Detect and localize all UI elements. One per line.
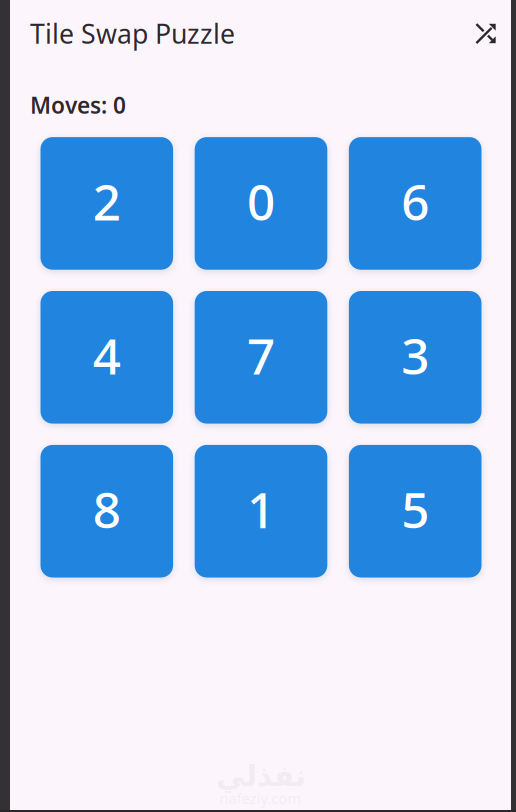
staticText: nafezly.com (219, 788, 301, 808)
staticText: 6 (401, 169, 429, 234)
button[interactable]: 1 (195, 445, 327, 577)
staticText: 7 (247, 322, 275, 388)
button[interactable]: 3 (349, 291, 481, 424)
button[interactable]: 2 (40, 137, 173, 270)
staticText: Moves: 0 (30, 90, 126, 120)
button[interactable]: Shuffle (469, 16, 503, 50)
staticText: 3 (401, 322, 429, 388)
button[interactable]: 7 (195, 291, 327, 424)
staticText: 5 (401, 476, 429, 542)
staticText: Tile Swap Puzzle (30, 16, 235, 51)
button[interactable]: 8 (40, 445, 173, 577)
button[interactable]: 6 (349, 137, 481, 270)
button[interactable]: 4 (40, 291, 173, 424)
button[interactable]: 0 (195, 137, 327, 270)
staticText: 1 (247, 476, 275, 542)
staticText: 0 (247, 169, 275, 234)
staticText: 2 (93, 169, 121, 234)
staticText: نفذلي (215, 759, 305, 792)
button[interactable]: 5 (349, 445, 481, 577)
staticText: 4 (93, 322, 121, 388)
staticText: 8 (93, 476, 121, 542)
